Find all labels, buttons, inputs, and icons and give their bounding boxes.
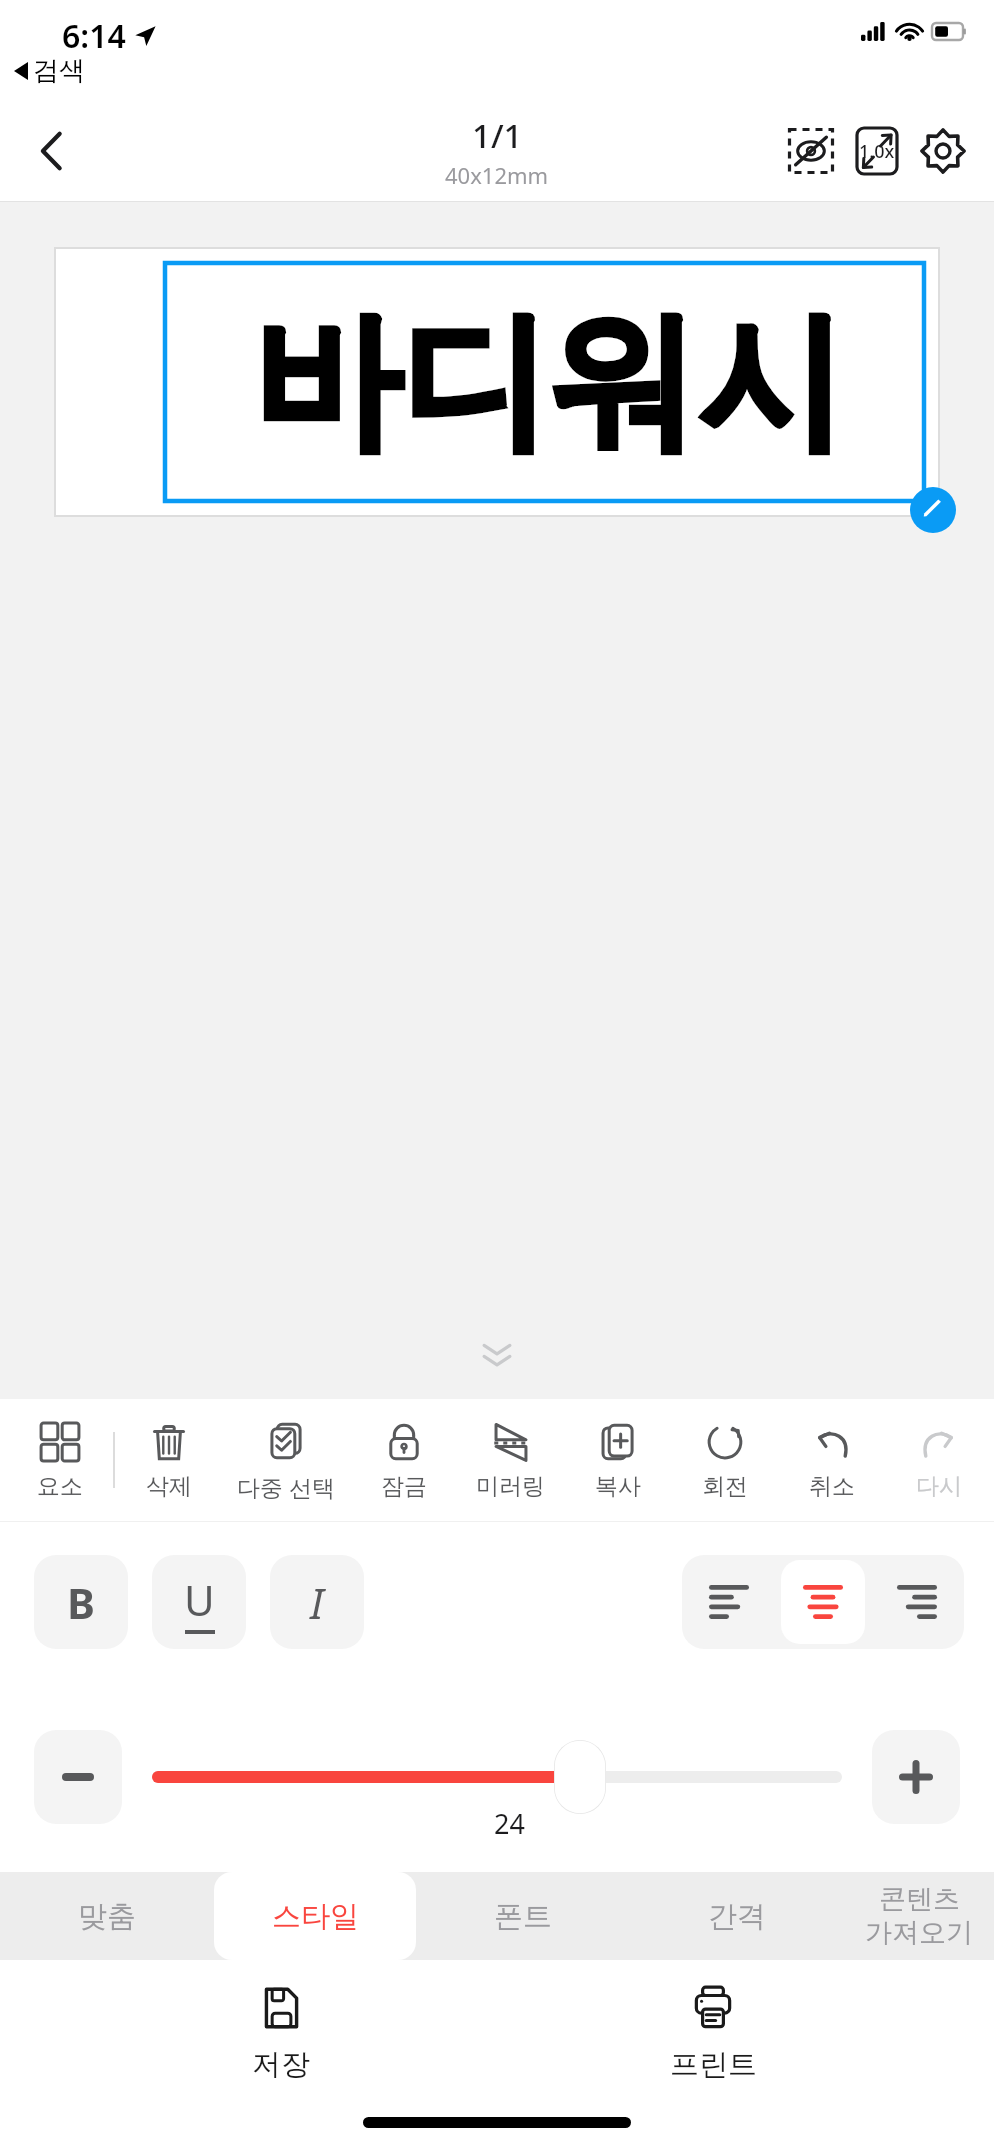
button[interactable]: 콘텐츠	[844, 1872, 994, 1960]
staticText: 요소	[37, 1472, 83, 1501]
button[interactable]: 다시	[885, 1399, 992, 1521]
staticText: 다시	[916, 1472, 962, 1501]
staticText: I	[310, 1574, 324, 1631]
staticText: 콘텐츠	[879, 1882, 960, 1916]
staticText: 저장	[252, 2046, 310, 2083]
button[interactable]: U	[152, 1555, 246, 1649]
staticText: 간격	[708, 1898, 766, 1935]
staticText: 복사	[595, 1472, 641, 1501]
button[interactable]: Collapse	[464, 1333, 530, 1377]
button[interactable]: 다중 선택	[222, 1399, 350, 1521]
button[interactable]: Align center	[781, 1560, 865, 1644]
staticText: 맞춤	[78, 1898, 136, 1935]
button[interactable]: 복사	[564, 1399, 671, 1521]
button[interactable]: Edit text	[910, 487, 956, 533]
staticText: 삭제	[146, 1472, 192, 1501]
staticText: 검색	[33, 54, 85, 87]
button[interactable]: 맞춤	[0, 1872, 214, 1960]
button[interactable]: Hide preview	[778, 118, 844, 184]
button[interactable]: 프린트	[563, 1982, 863, 2083]
button[interactable]: Zoom 1.0x	[844, 118, 910, 184]
staticText: 6:14	[62, 14, 126, 58]
button[interactable]: 미러링	[457, 1399, 564, 1521]
button[interactable]: I	[270, 1555, 364, 1649]
button[interactable]: Align left	[687, 1560, 771, 1644]
staticText: 바디워시	[253, 289, 845, 475]
button[interactable]: 바디워시	[55, 248, 939, 516]
button[interactable]: Font size 24	[554, 1740, 606, 1814]
staticText: 프린트	[670, 2046, 757, 2083]
staticText: 다중 선택	[237, 1471, 335, 1502]
staticText: 취소	[809, 1472, 855, 1501]
staticText: 1.0x	[859, 139, 895, 164]
button[interactable]: 취소	[778, 1399, 885, 1521]
button[interactable]: Align right	[875, 1560, 959, 1644]
button[interactable]: 스타일	[214, 1872, 416, 1960]
staticText: 가져오기	[865, 1916, 973, 1950]
button[interactable]: 저장	[131, 1982, 431, 2083]
button[interactable]: Settings	[910, 118, 976, 184]
staticText: 24	[494, 1805, 525, 1842]
staticText: 1/1	[472, 113, 523, 158]
button[interactable]: 폰트	[416, 1872, 630, 1960]
staticText: 40x12mm	[445, 160, 549, 190]
button[interactable]: 회전	[671, 1399, 778, 1521]
button[interactable]: 요소	[6, 1399, 113, 1521]
button[interactable]: Increase	[872, 1730, 960, 1824]
button[interactable]: 1/1	[445, 113, 549, 190]
staticText: 잠금	[381, 1472, 427, 1501]
button[interactable]: Decrease	[34, 1730, 122, 1824]
staticText: 미러링	[476, 1472, 545, 1501]
button[interactable]: 잠금	[350, 1399, 457, 1521]
button[interactable]: 삭제	[115, 1399, 222, 1521]
button[interactable]: Back	[22, 121, 82, 181]
staticText: 회전	[702, 1472, 748, 1501]
button[interactable]: 간격	[630, 1872, 844, 1960]
button[interactable]: B	[34, 1555, 128, 1649]
staticText: U	[184, 1571, 215, 1628]
staticText: 스타일	[272, 1898, 359, 1935]
staticText: 폰트	[494, 1898, 552, 1935]
staticText: B	[67, 1574, 95, 1631]
